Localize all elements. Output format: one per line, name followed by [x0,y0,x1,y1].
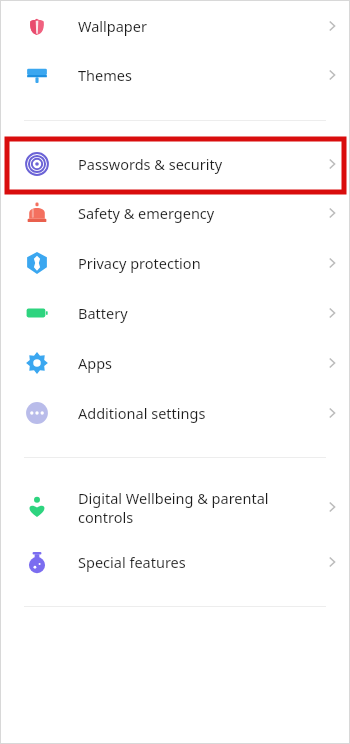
button[interactable]: Battery [0,288,350,338]
staticText: Apps [78,353,314,373]
staticText: Privacy protection [78,253,314,273]
button[interactable]: Safety & emergency [0,188,350,238]
staticText: Wallpaper [78,16,314,36]
staticText: Safety & emergency [78,203,314,223]
button[interactable]: Privacy protection [0,238,350,288]
button[interactable]: Themes [0,50,350,99]
button[interactable]: Additional settings [0,388,350,438]
staticText: Themes [78,65,314,85]
staticText: Digital Wellbeing & parental controls [78,488,314,527]
staticText: Battery [78,303,314,323]
button[interactable]: Passwords & security [0,140,350,188]
button[interactable]: Digital Wellbeing & parental controls [0,482,350,532]
staticText: Passwords & security [78,154,314,174]
button[interactable]: Special features [0,544,350,580]
staticText: Special features [78,552,314,572]
button[interactable]: Wallpaper [0,1,350,50]
staticText: Additional settings [78,403,314,423]
button[interactable]: Apps [0,338,350,388]
